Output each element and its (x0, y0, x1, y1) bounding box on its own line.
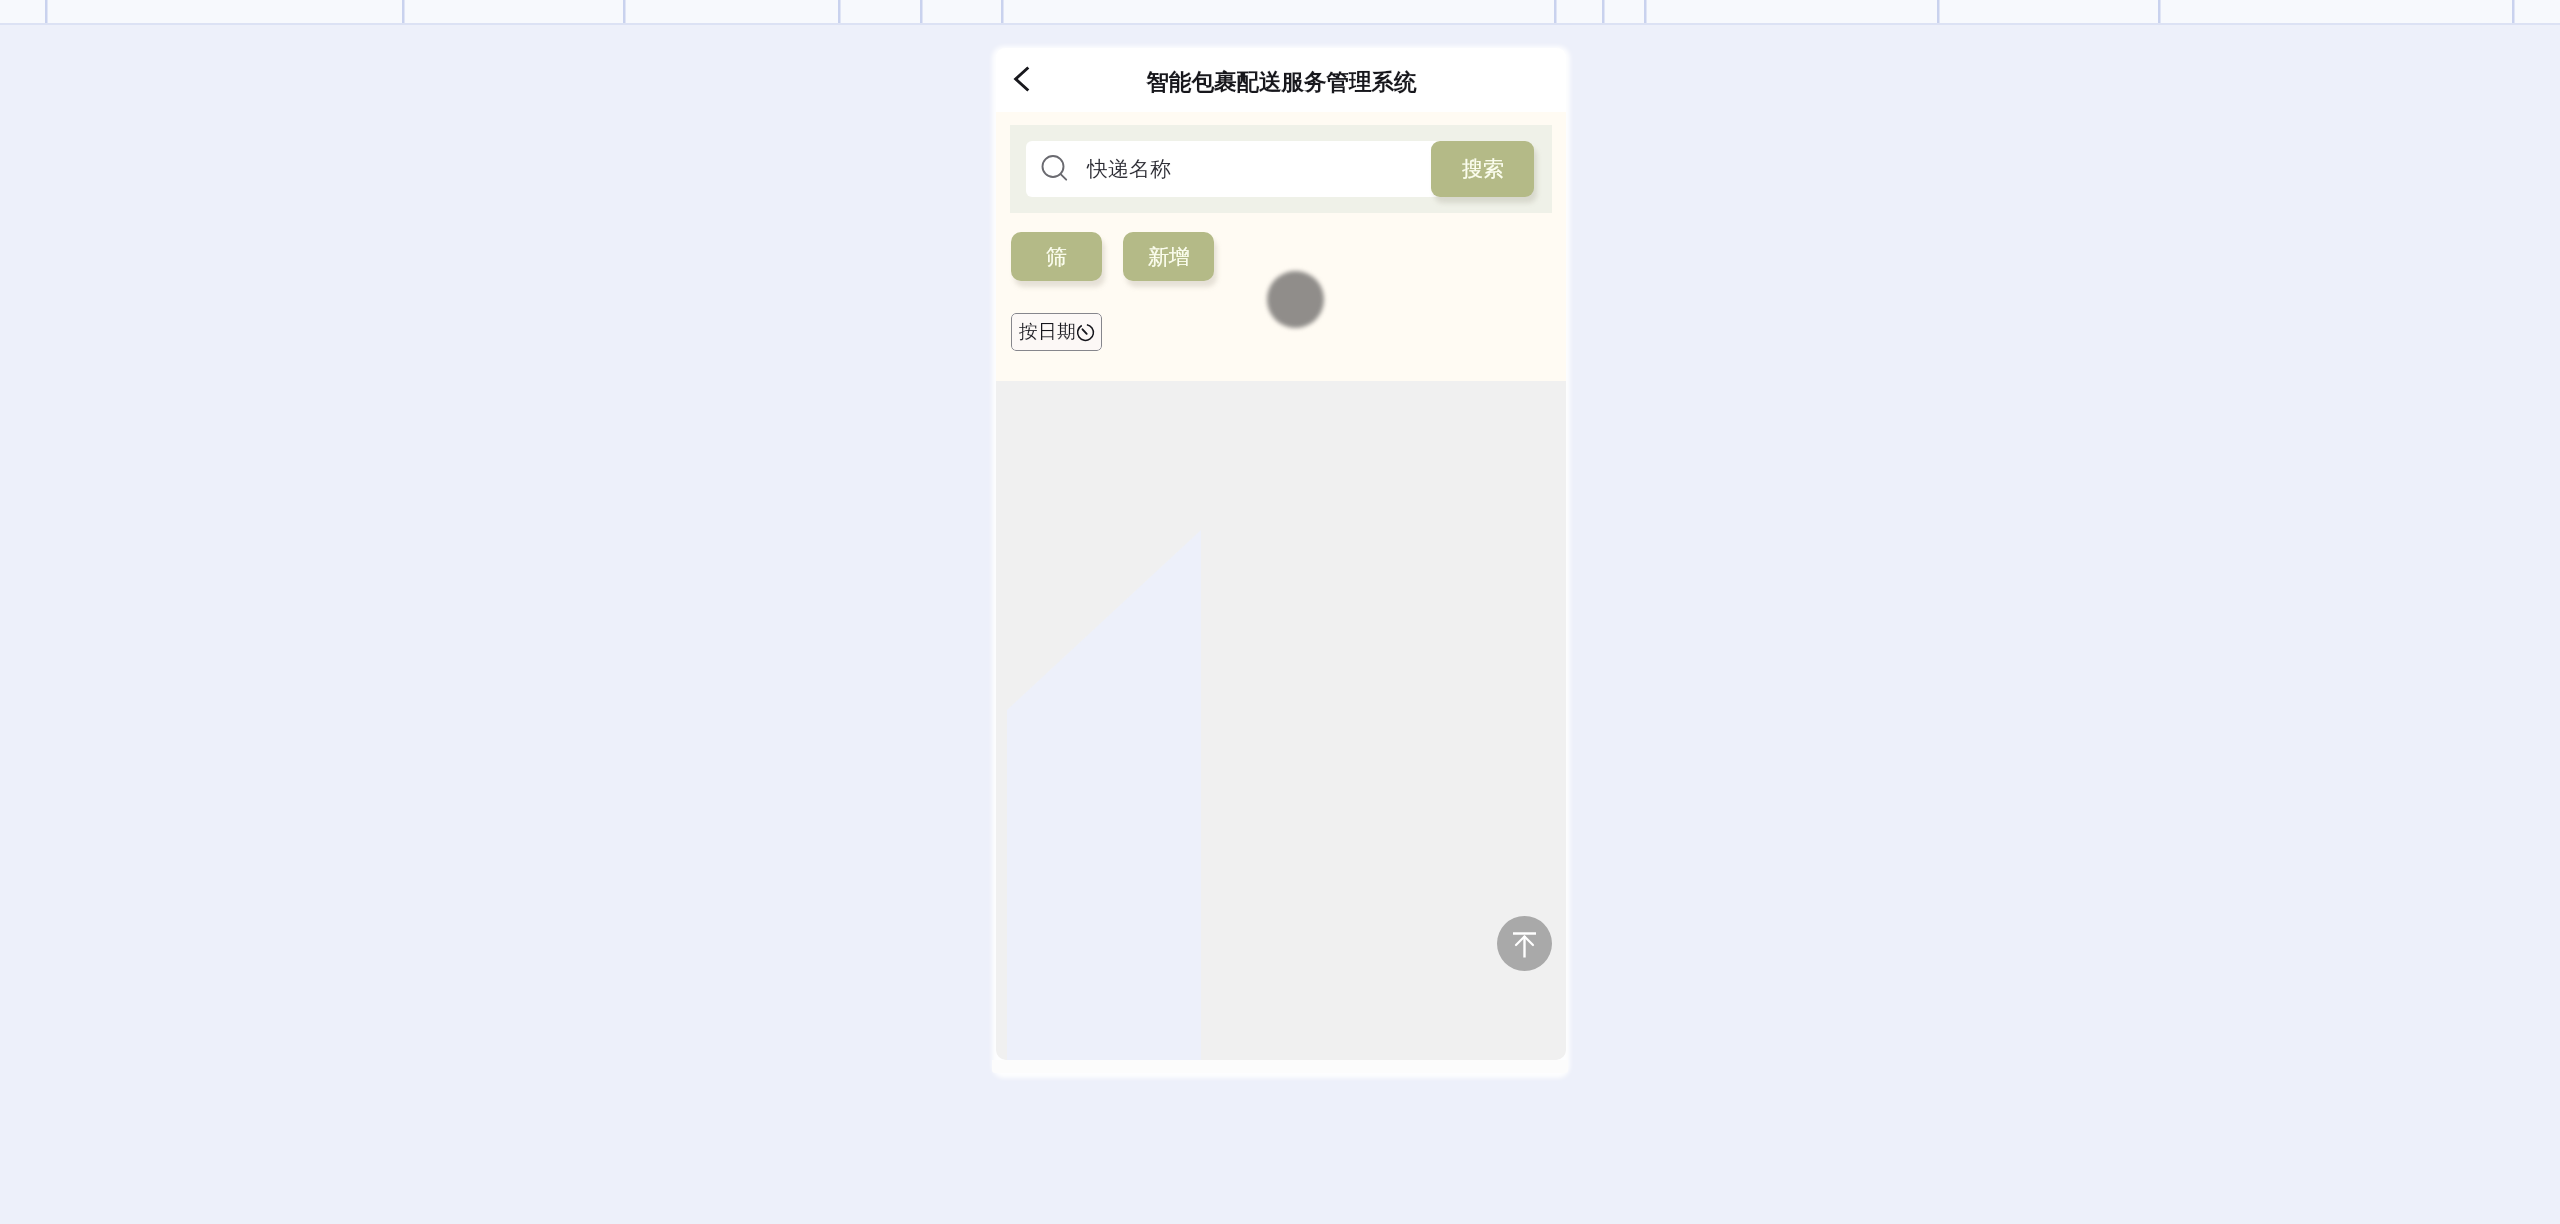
button[interactable]: Back to top (1497, 916, 1552, 971)
staticText: 按日期 (1019, 320, 1076, 344)
button[interactable]: Back (1001, 59, 1041, 99)
staticText: 搜索 (1462, 156, 1504, 182)
button[interactable]: 快递名称 search field (1026, 141, 1524, 197)
staticText: 智能包裹配送服务管理系统 (1146, 68, 1416, 96)
staticText: 快递名称 (1087, 156, 1171, 182)
button[interactable]: 搜索 (1431, 141, 1534, 197)
button[interactable]: 筛 (1011, 232, 1102, 281)
button[interactable]: 新增 (1123, 232, 1214, 281)
staticText: 筛 (1046, 244, 1067, 270)
staticText: 新增 (1148, 244, 1190, 270)
button[interactable]: 按日期 (1011, 313, 1102, 351)
